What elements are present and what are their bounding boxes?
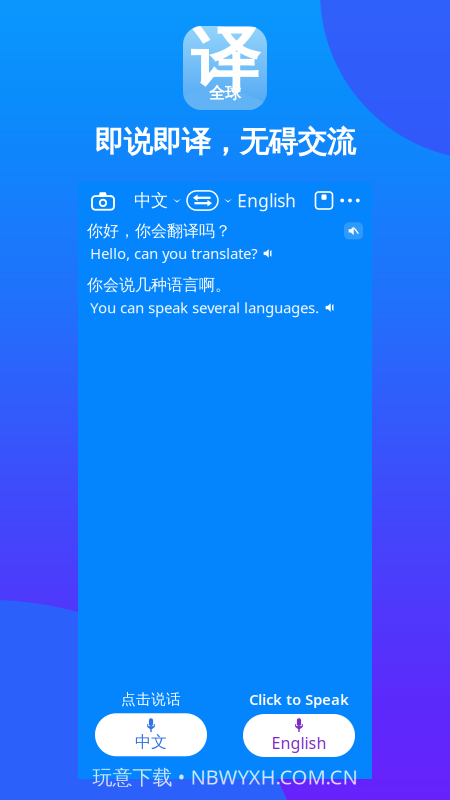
staticText: Hello, can you translate? (90, 244, 257, 263)
button[interactable]: 中文 (134, 184, 181, 216)
button[interactable]: Save (311, 184, 337, 216)
staticText: 全球 (209, 83, 241, 103)
staticText: 玩意下载 • NBWYXH.COM.CN (92, 763, 357, 790)
button[interactable]: Mute (344, 222, 363, 239)
staticText: 译 (190, 18, 259, 103)
button[interactable]: Play (263, 248, 274, 259)
staticText: English (237, 189, 296, 212)
staticText: Click to Speak (249, 689, 349, 709)
button[interactable]: Swap languages (187, 191, 218, 210)
button[interactable]: English (243, 714, 355, 757)
staticText: 中文 (134, 190, 168, 211)
staticText: English (271, 732, 326, 753)
staticText: 你好，你会翻译吗？ (87, 221, 231, 241)
button[interactable]: 中文 (95, 713, 207, 756)
button[interactable]: More (337, 184, 363, 216)
staticText: 中文 (135, 732, 167, 752)
staticText: You can speak several languages. (90, 298, 319, 317)
button[interactable]: Camera (87, 184, 119, 216)
staticText: 点击说话 (121, 690, 181, 708)
button[interactable]: English (224, 184, 296, 216)
staticText: 即说即译，无碍交流 (94, 124, 355, 160)
staticText: 你会说几种语言啊。 (87, 275, 231, 295)
button[interactable]: Play (325, 302, 336, 313)
